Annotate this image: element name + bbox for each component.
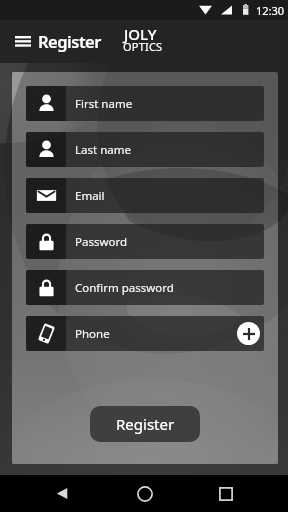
staticText: Password [75,234,128,250]
button[interactable]: Open navigation menu [8,26,38,56]
button[interactable]: Register [90,406,200,442]
button[interactable]: Phone [26,316,264,351]
button[interactable]: First name [26,86,264,121]
button[interactable]: Password [26,224,264,259]
button[interactable]: Last name [26,132,264,167]
button[interactable]: Home [126,475,163,512]
staticText: Register [38,30,101,52]
button[interactable]: Confirm password [26,270,264,305]
staticText: Email [75,188,105,204]
staticText: Phone [75,326,110,342]
button[interactable]: Email [26,178,264,213]
staticText: Confirm password [75,280,174,296]
staticText: First name [75,96,133,112]
staticText: 12:30 [256,3,285,18]
staticText: OPTICS [123,39,163,54]
button[interactable]: Add [237,322,260,345]
button[interactable]: Recent apps [207,475,244,512]
button[interactable]: Back [44,475,81,512]
staticText: JOLY [124,24,157,44]
staticText: Last name [75,142,131,158]
staticText: Register [116,414,175,434]
